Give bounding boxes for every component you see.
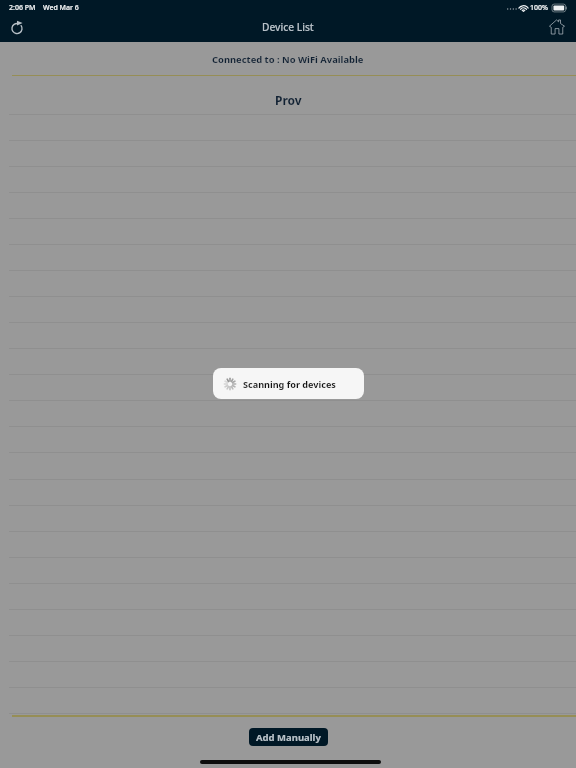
staticText: Device List: [262, 20, 314, 34]
button[interactable]: Home: [545, 15, 569, 39]
staticText: Prov: [275, 92, 302, 108]
button[interactable]: Refresh: [5, 15, 29, 39]
button[interactable]: [0, 713, 576, 739]
staticText: 2:06 PM: [9, 3, 36, 13]
button[interactable]: [0, 348, 576, 374]
staticText: 100%: [530, 3, 548, 13]
staticText: Connected to : No WiFi Available: [212, 53, 364, 66]
button[interactable]: [0, 374, 576, 400]
staticText: Wed Mar 6: [43, 3, 79, 13]
staticText: Scanning for devices: [243, 378, 336, 390]
staticText: Add Manually: [256, 731, 321, 744]
button[interactable]: Add Manually: [249, 728, 328, 746]
